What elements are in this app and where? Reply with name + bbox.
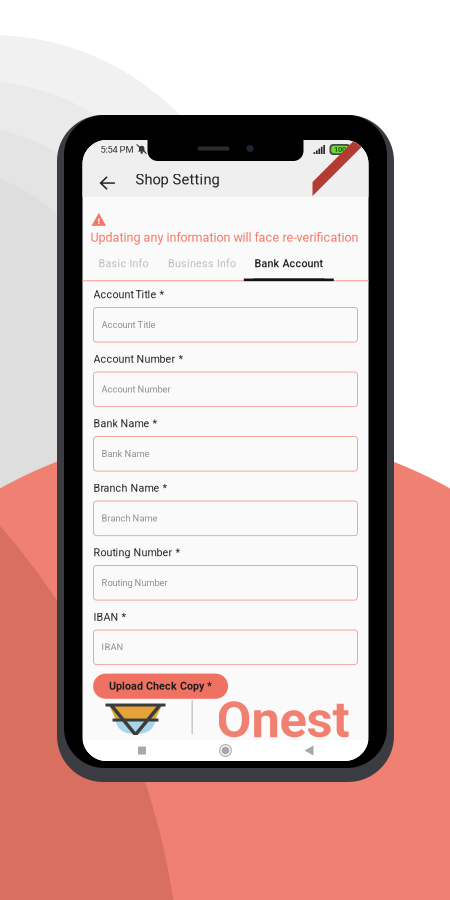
button[interactable]: Back — [92, 170, 122, 196]
button[interactable]: Bank Name — [93, 436, 357, 471]
button[interactable]: Account Number — [93, 372, 357, 407]
button[interactable]: IBAN — [93, 630, 357, 665]
button[interactable]: Upload Check Copy * — [93, 674, 228, 699]
staticText: Account Title — [101, 319, 155, 330]
button[interactable]: Home — [201, 740, 249, 761]
staticText: Account Title * — [93, 288, 164, 301]
staticText: IBAN * — [93, 611, 126, 623]
button[interactable]: Branch Name — [93, 501, 357, 536]
staticText: Bank Account — [254, 257, 323, 270]
staticText: Updating any information will face re-ve… — [90, 230, 358, 245]
button[interactable]: Routing Number — [93, 565, 357, 600]
staticText: Branch Name — [101, 513, 157, 524]
staticText: Business Info — [168, 257, 236, 270]
staticText: Branch Name * — [93, 482, 167, 494]
staticText: Bank Name — [101, 448, 149, 459]
staticText: Upload Check Copy * — [109, 680, 212, 692]
staticText: IBAN — [101, 642, 123, 653]
staticText: Routing Number — [101, 577, 167, 588]
staticText: Bank Name * — [93, 417, 157, 430]
button[interactable]: Business Info — [165, 256, 238, 281]
staticText: Onest — [216, 690, 349, 750]
staticText: Routing Number * — [93, 546, 180, 559]
staticText: Account Number * — [93, 353, 183, 365]
staticText: Shop Setting — [135, 171, 219, 188]
button[interactable]: Basic Info — [97, 256, 149, 281]
staticText: 5:54 PM — [100, 144, 133, 155]
button[interactable]: Back — [285, 740, 333, 761]
button[interactable]: Bank Account — [253, 256, 324, 281]
button[interactable]: Account Title — [93, 307, 357, 342]
staticText: Account Number — [101, 384, 170, 395]
button[interactable]: Recent apps — [118, 740, 166, 761]
staticText: Basic Info — [98, 257, 148, 270]
staticText: 100 — [334, 145, 346, 154]
